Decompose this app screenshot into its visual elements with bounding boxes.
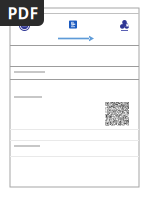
staticText: PDF <box>7 2 38 24</box>
